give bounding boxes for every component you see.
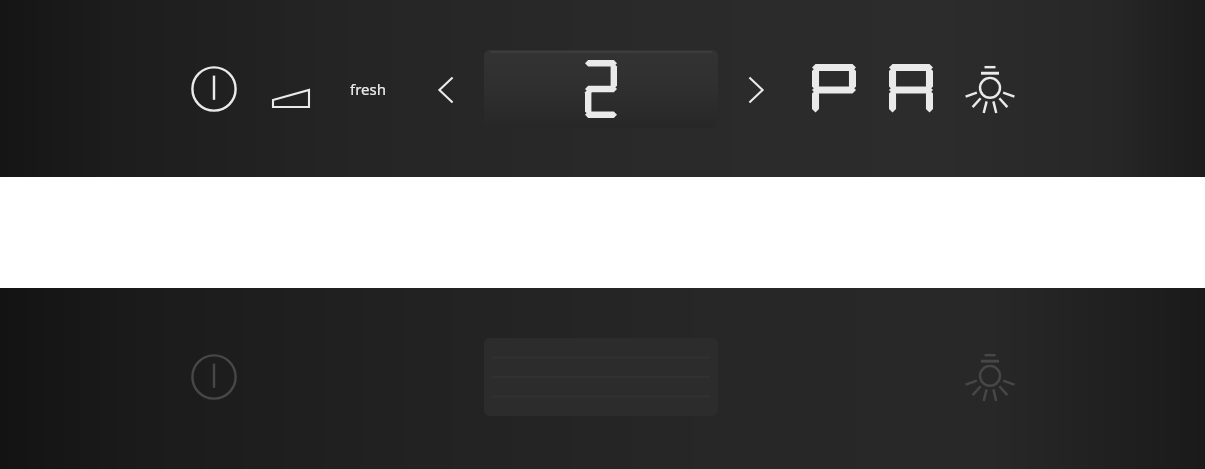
button[interactable]: Volume <box>265 67 315 117</box>
button[interactable]: fresh <box>336 70 400 108</box>
staticText: fresh <box>350 79 386 99</box>
button[interactable]: Light <box>963 351 1017 405</box>
button[interactable]: Program display <box>484 50 718 128</box>
button[interactable]: Program <box>812 64 856 116</box>
button[interactable]: Light <box>963 63 1017 117</box>
button[interactable]: Next <box>734 64 778 116</box>
button[interactable]: Power <box>187 62 241 116</box>
button[interactable]: Previous <box>424 64 468 116</box>
button[interactable]: Auto <box>889 64 933 116</box>
button[interactable]: Power <box>187 350 241 404</box>
